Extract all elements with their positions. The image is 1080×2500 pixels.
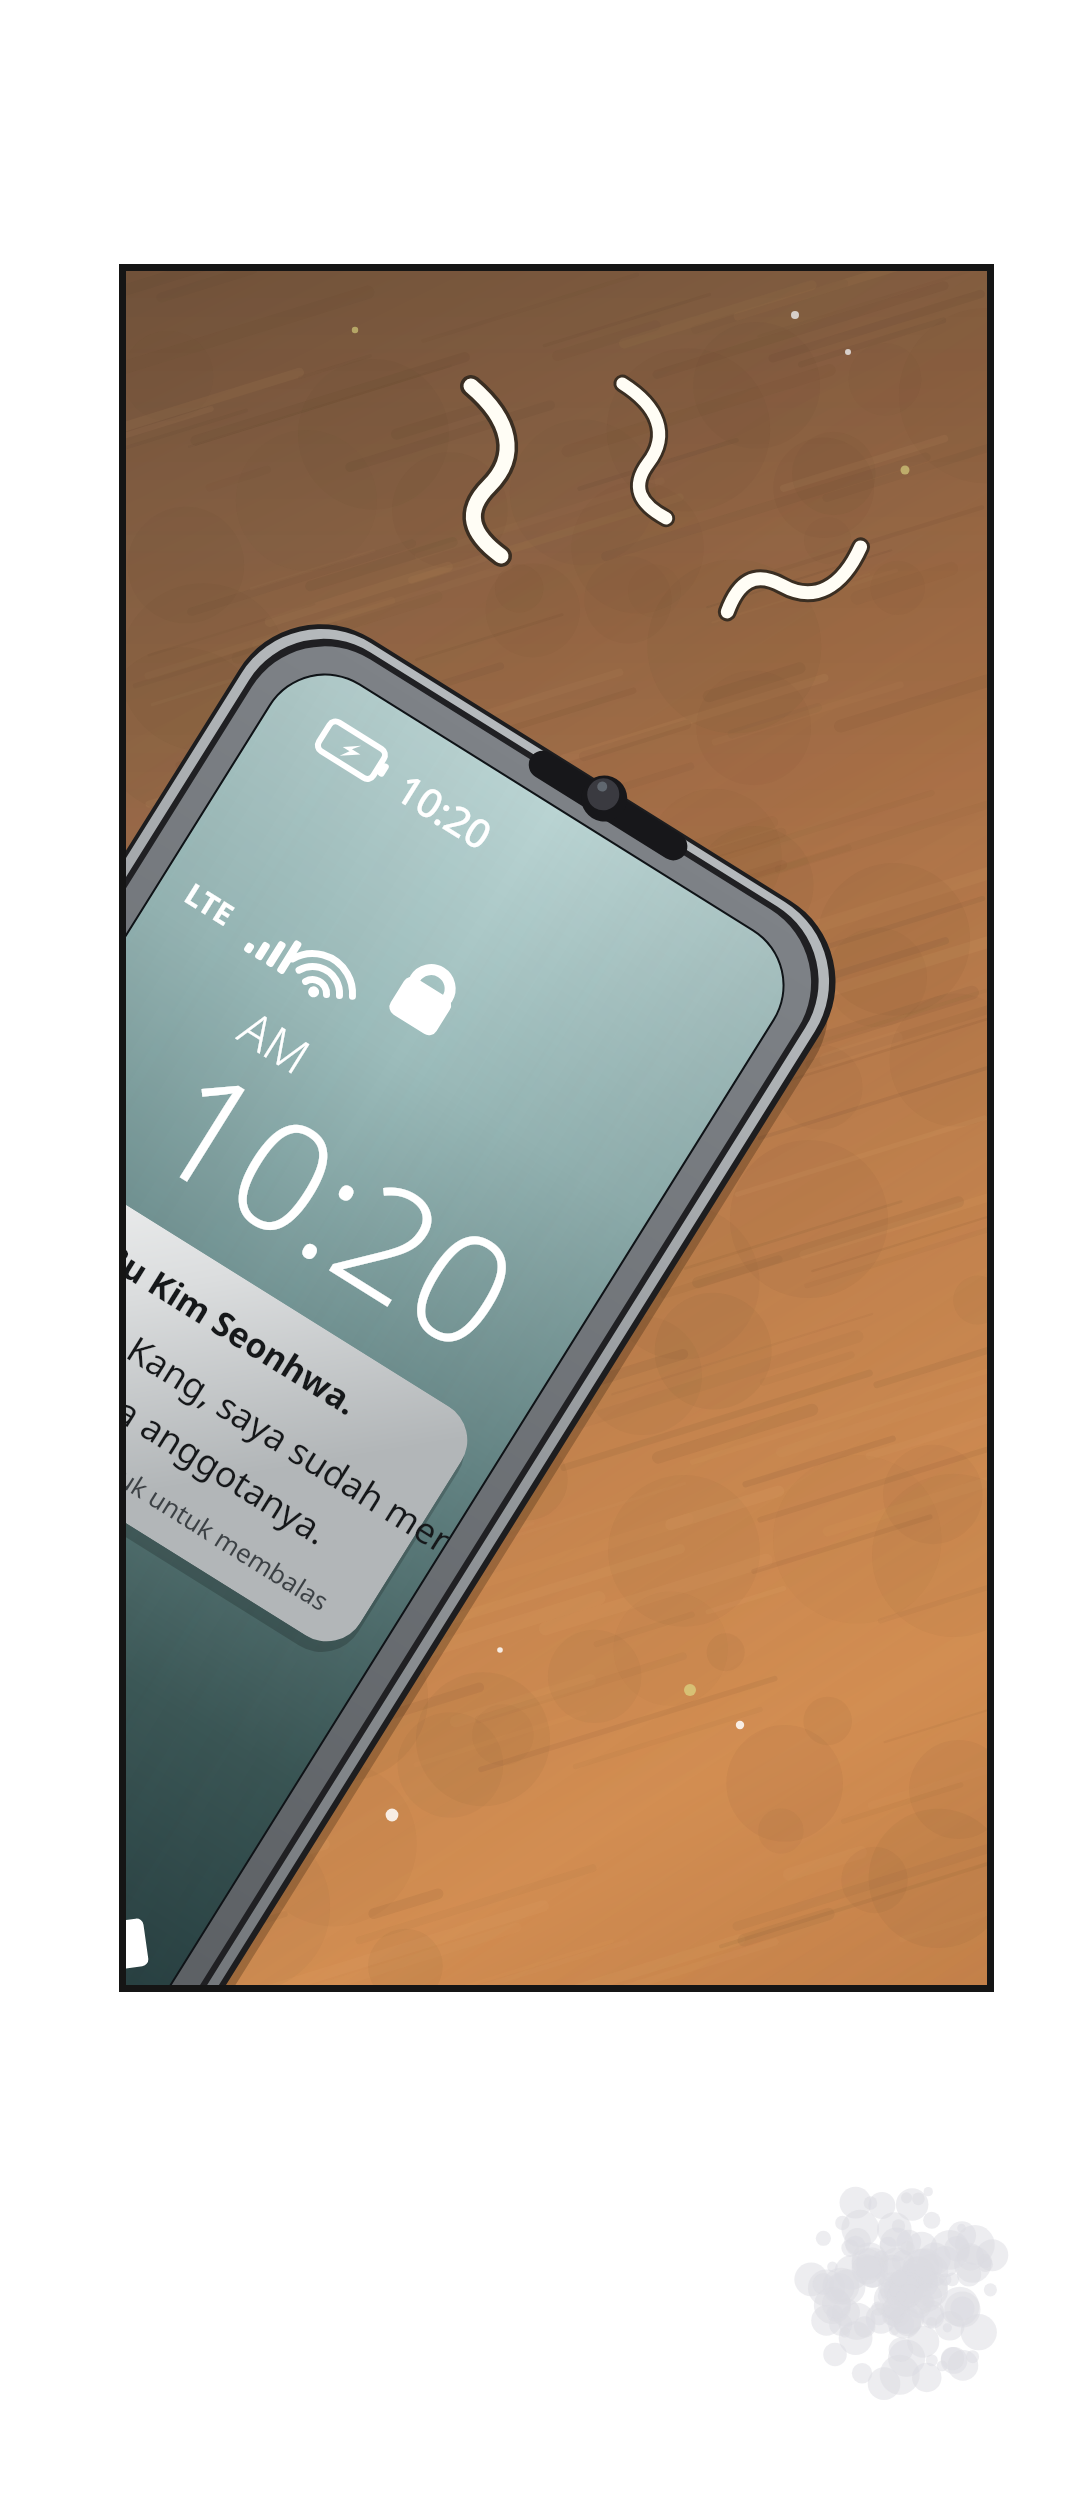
button[interactable]: Comic panel: phone on a desk showing a l… <box>0 0 1080 2500</box>
